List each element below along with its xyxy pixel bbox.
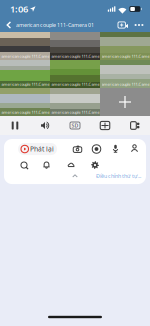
staticText: SD	[71, 122, 78, 129]
button[interactable]: People	[125, 143, 144, 155]
button[interactable]: Collapse	[68, 173, 82, 180]
staticText: Điều chỉnh thứ tự...	[96, 172, 141, 180]
staticText: american couple 111-Camera 01	[16, 21, 94, 29]
button[interactable]: Cloud	[59, 159, 83, 171]
button[interactable]: Screen record	[120, 116, 150, 134]
staticText: american couple 111-Came	[101, 53, 149, 59]
button[interactable]: Mute	[30, 116, 60, 134]
button[interactable]: american couple 111-Came	[0, 88, 50, 116]
staticText: american couple 111-Came	[51, 81, 99, 87]
staticText: american couple 111-Came	[101, 81, 149, 87]
button[interactable]: Zoom	[14, 159, 34, 171]
button[interactable]: Add camera	[100, 88, 150, 116]
button[interactable]: Alerts	[34, 159, 59, 171]
button[interactable]: american couple 111-Came	[100, 32, 150, 60]
button[interactable]: Settings	[83, 159, 107, 171]
staticText: american couple 111-Came	[51, 53, 99, 59]
button[interactable]: american couple 111-Came	[50, 32, 100, 60]
button[interactable]: Record	[87, 143, 106, 155]
button[interactable]: Layout	[90, 116, 120, 134]
button[interactable]: Phát lại	[18, 143, 57, 155]
button[interactable]: More	[132, 19, 146, 30]
button[interactable]: american couple 111-Came	[0, 60, 50, 88]
button[interactable]: Snapshot	[68, 143, 87, 155]
button[interactable]: Add camera	[116, 19, 130, 30]
staticText: Phát lại	[30, 145, 54, 153]
button[interactable]: Pause	[0, 116, 30, 134]
button[interactable]: Điều chỉnh thứ tự...	[96, 171, 146, 181]
staticText: american couple 111-Came	[1, 81, 49, 87]
button[interactable]: american couple 111-Came	[100, 60, 150, 88]
button[interactable]: american couple 111-Came	[50, 88, 100, 116]
button[interactable]: Quality	[60, 116, 90, 134]
button[interactable]: Back	[0, 18, 16, 31]
button[interactable]: Microphone	[106, 143, 125, 155]
staticText: 1:06	[10, 3, 28, 15]
button[interactable]: american couple 111-Came	[0, 32, 50, 60]
staticText: american couple 111-Came	[1, 53, 49, 59]
staticText: american couple 111-Came	[51, 109, 99, 115]
staticText: american couple 111-Came	[1, 109, 49, 115]
button[interactable]: american couple 111-Came	[50, 60, 100, 88]
